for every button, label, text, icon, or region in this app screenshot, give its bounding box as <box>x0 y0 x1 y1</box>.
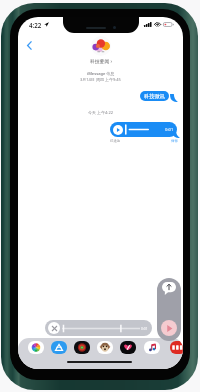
staticText: 保留 <box>171 139 178 143</box>
button[interactable] <box>170 341 183 354</box>
staticText: 已送达 <box>110 139 121 143</box>
staticText: 0:01 <box>165 127 174 133</box>
button[interactable] <box>120 341 136 354</box>
button[interactable] <box>28 341 44 354</box>
button[interactable]: 科技微讯 <box>140 91 169 101</box>
button[interactable]: Back <box>22 38 36 52</box>
button[interactable]: 0:01 <box>110 122 177 137</box>
staticText: 4:22 <box>29 21 42 29</box>
staticText: 科技微讯 <box>144 93 165 100</box>
staticText: 科技要闻 › <box>90 58 112 65</box>
staticText: 0:01 <box>141 326 148 330</box>
button[interactable] <box>51 341 67 354</box>
button[interactable] <box>144 341 160 354</box>
staticText: 今天 上午4:22 <box>18 110 183 115</box>
button[interactable]: Cancel <box>48 322 60 334</box>
button[interactable]: Play <box>161 320 177 336</box>
button[interactable] <box>97 341 113 354</box>
button[interactable]: Send <box>162 282 176 295</box>
button[interactable]: Cancel <box>45 320 152 336</box>
staticText: iMessage 信息 <box>87 71 115 76</box>
staticText: 3月14日 周四 上午9:45 <box>80 77 121 82</box>
button[interactable]: 科技要闻 › <box>18 36 183 65</box>
button[interactable] <box>74 341 90 354</box>
